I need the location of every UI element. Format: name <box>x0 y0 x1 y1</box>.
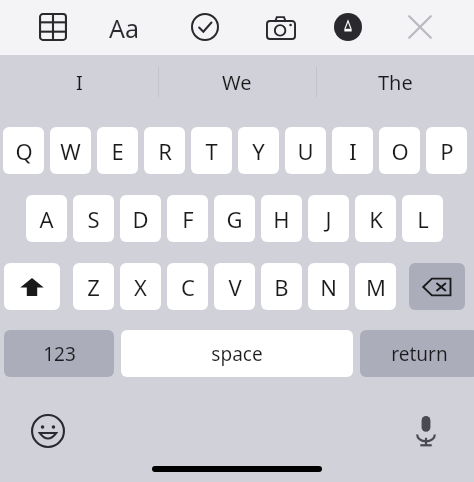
button[interactable]: B <box>261 263 302 310</box>
staticText: V <box>228 272 242 302</box>
button[interactable]: 123 <box>4 330 114 377</box>
button[interactable]: space <box>121 330 353 377</box>
button[interactable]: X <box>120 263 161 310</box>
button[interactable]: We <box>165 55 309 109</box>
button[interactable]: F <box>167 195 208 242</box>
button[interactable]: Q <box>3 127 44 174</box>
button[interactable]: V <box>214 263 255 310</box>
button[interactable]: O <box>379 127 420 174</box>
button[interactable]: Emoji <box>28 411 68 451</box>
button[interactable]: Z <box>73 263 114 310</box>
button[interactable]: H <box>261 195 302 242</box>
staticText: U <box>297 136 314 166</box>
button[interactable]: E <box>97 127 138 174</box>
staticText: space <box>211 341 263 367</box>
button[interactable]: N <box>308 263 349 310</box>
button[interactable]: Camera <box>266 14 296 40</box>
button[interactable]: W <box>50 127 91 174</box>
button[interactable]: Checklist <box>191 13 219 41</box>
staticText: R <box>158 136 172 166</box>
button[interactable]: A <box>26 195 67 242</box>
staticText: N <box>320 272 337 302</box>
button[interactable]: K <box>355 195 396 242</box>
staticText: G <box>226 204 243 234</box>
button[interactable]: The <box>323 55 467 109</box>
staticText: O <box>391 136 409 166</box>
staticText: M <box>366 272 386 302</box>
button[interactable]: C <box>167 263 208 310</box>
staticText: We <box>222 69 252 96</box>
button[interactable]: L <box>402 195 443 242</box>
button[interactable]: Table <box>39 13 67 41</box>
staticText: 123 <box>43 341 76 367</box>
staticText: Z <box>87 272 100 302</box>
button[interactable]: Markup <box>334 13 362 41</box>
button[interactable]: J <box>308 195 349 242</box>
staticText: Q <box>15 136 33 166</box>
staticText: T <box>205 136 218 166</box>
staticText: I <box>76 69 83 96</box>
staticText: K <box>369 204 383 234</box>
staticText: J <box>325 204 332 234</box>
staticText: S <box>87 204 100 234</box>
button[interactable]: return <box>360 330 474 377</box>
button[interactable]: Backspace <box>409 263 465 310</box>
button[interactable]: D <box>120 195 161 242</box>
staticText: Y <box>252 136 265 166</box>
staticText: D <box>132 204 149 234</box>
button[interactable]: Close <box>405 12 435 42</box>
button[interactable]: R <box>144 127 185 174</box>
staticText: H <box>273 204 290 234</box>
button[interactable]: T <box>191 127 232 174</box>
staticText: Aa <box>109 11 140 43</box>
staticText: A <box>39 204 54 234</box>
button[interactable]: S <box>73 195 114 242</box>
staticText: C <box>181 272 195 302</box>
staticText: L <box>417 204 429 234</box>
staticText: P <box>440 136 454 166</box>
button[interactable]: Text format <box>104 11 144 43</box>
staticText: X <box>134 272 147 302</box>
staticText: B <box>274 272 289 302</box>
button[interactable]: G <box>214 195 255 242</box>
staticText: I <box>349 136 357 166</box>
button[interactable]: U <box>285 127 326 174</box>
staticText: return <box>391 341 448 367</box>
staticText: E <box>111 136 124 166</box>
button[interactable]: Dictation <box>406 411 446 451</box>
button[interactable]: M <box>355 263 396 310</box>
staticText: F <box>182 204 194 234</box>
button[interactable]: Shift <box>4 263 60 310</box>
button[interactable]: I <box>7 55 151 109</box>
button[interactable]: P <box>426 127 467 174</box>
button[interactable]: Y <box>238 127 279 174</box>
button[interactable]: I <box>332 127 373 174</box>
staticText: The <box>378 69 413 96</box>
staticText: W <box>60 136 81 166</box>
